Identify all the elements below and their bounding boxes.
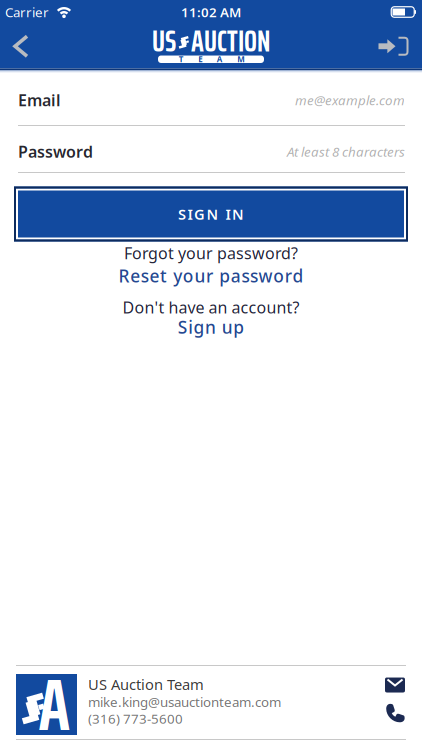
staticText: mike.king@usauctionteam.com (88, 693, 281, 711)
staticText: A (38, 647, 70, 750)
staticText: Email (18, 89, 61, 111)
staticText: T (179, 54, 184, 64)
staticText: Forgot your password? (124, 242, 298, 264)
button[interactable] (385, 703, 405, 723)
button[interactable]: A (16, 674, 77, 735)
staticText: At least 8 characters (287, 143, 405, 160)
staticText: Don't have an account? (122, 297, 299, 318)
staticText: E (198, 54, 202, 64)
staticText: (316) 773-5600 (88, 710, 183, 727)
staticText: me@example.com (295, 91, 405, 109)
button[interactable]: Email (0, 75, 422, 125)
staticText: AUCTION (191, 17, 270, 64)
staticText: 11:02 AM (181, 3, 241, 21)
button[interactable] (0, 36, 27, 56)
staticText: SIGN IN (178, 204, 244, 224)
staticText: A (217, 54, 223, 64)
staticText: Reset your password (119, 264, 303, 287)
staticText: Password (18, 141, 93, 162)
staticText: Carrier (5, 3, 49, 21)
button[interactable]: Reset your password (61, 264, 361, 286)
staticText: Sign up (178, 315, 244, 338)
staticText: M (237, 54, 245, 64)
button[interactable] (385, 677, 405, 692)
button[interactable]: US (152, 28, 270, 64)
button[interactable]: SIGN IN (0, 186, 422, 241)
staticText: US (152, 17, 176, 64)
button[interactable]: Password (0, 131, 422, 172)
button[interactable]: Sign up (161, 318, 261, 339)
button[interactable] (384, 38, 422, 55)
staticText: US Auction Team (88, 675, 204, 694)
